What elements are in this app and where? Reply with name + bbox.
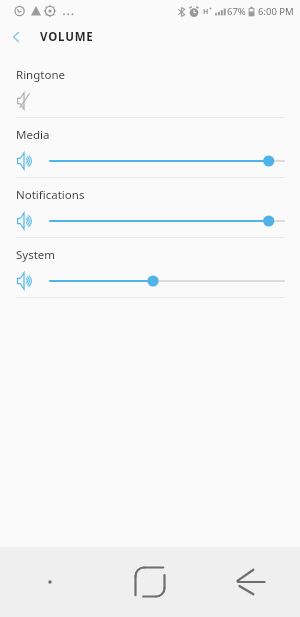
button[interactable]: Media <box>0 118 300 177</box>
button[interactable]: Ringtone <box>0 58 300 117</box>
staticText: VOLUME <box>40 29 94 45</box>
button[interactable]: Back <box>200 547 300 617</box>
button[interactable]: System <box>0 238 300 297</box>
staticText: Ringtone <box>16 67 66 83</box>
button[interactable]: Recents <box>0 547 100 617</box>
button[interactable]: Home <box>100 547 200 617</box>
staticText: + <box>209 6 212 13</box>
staticText: 6:00 PM <box>258 5 294 18</box>
button[interactable]: Notifications <box>0 178 300 237</box>
staticText: Notifications <box>16 187 85 203</box>
staticText: System <box>16 247 56 263</box>
staticText: Media <box>16 127 50 143</box>
staticText: 67% <box>227 5 246 18</box>
button[interactable]: Back <box>0 22 32 52</box>
staticText: H <box>203 7 209 17</box>
